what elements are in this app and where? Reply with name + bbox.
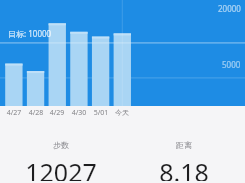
staticText: 12027 xyxy=(25,155,97,181)
staticText: 8.18 xyxy=(159,155,209,181)
staticText: 距离 xyxy=(176,140,192,150)
staticText: 5000 xyxy=(222,59,241,70)
button[interactable]: 今天 xyxy=(110,108,134,117)
button[interactable]: 4/29 xyxy=(45,108,69,118)
button[interactable]: 5/01 xyxy=(89,108,113,118)
button[interactable]: Weekly step chart xyxy=(0,0,245,106)
button[interactable]: 4/30 xyxy=(67,108,91,118)
button[interactable]: 距离 xyxy=(122,138,245,183)
button[interactable]: 步数 xyxy=(0,138,122,183)
staticText: 步数 xyxy=(53,140,69,150)
staticText: 目标: 10000 xyxy=(8,28,52,39)
staticText: 20000 xyxy=(218,3,241,14)
button[interactable]: 4/28 xyxy=(24,108,48,118)
button[interactable]: 4/27 xyxy=(2,108,26,118)
